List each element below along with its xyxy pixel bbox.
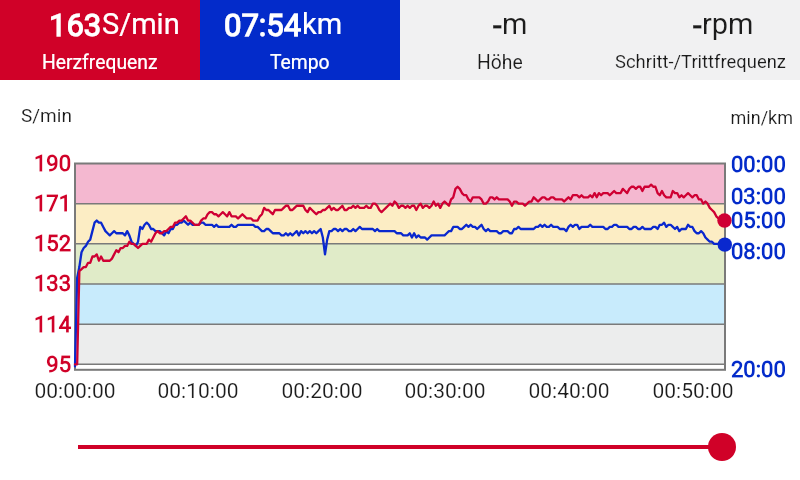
staticText: - (693, 7, 702, 43)
staticText: S/min (21, 104, 121, 126)
staticText: 07:54 (224, 7, 302, 43)
staticText: 163 (49, 7, 102, 43)
staticText: rpm (702, 7, 754, 41)
staticText: 190 (0, 151, 71, 177)
staticText: 00:20:00 (262, 379, 382, 404)
staticText: 00:30:00 (385, 379, 505, 404)
staticText: 08:00 (731, 239, 800, 265)
staticText: 20:00 (731, 357, 800, 383)
staticText: Höhe (477, 51, 523, 74)
staticText: 95 (0, 352, 71, 378)
staticText: 171 (0, 191, 71, 217)
button[interactable]: Timeline position (706, 431, 738, 463)
staticText: 133 (0, 271, 71, 297)
staticText: Schritt-/Trittfrequenz (615, 51, 786, 73)
staticText: Herzfrequenz (42, 51, 158, 74)
button[interactable]: - (600, 0, 800, 80)
button[interactable]: 163 (0, 0, 200, 80)
staticText: 05:00 (731, 208, 800, 234)
staticText: 00:40:00 (509, 379, 629, 404)
staticText: min/km (703, 107, 793, 128)
staticText: 00:00 (731, 152, 800, 178)
staticText: 00:10:00 (138, 379, 258, 404)
button[interactable]: - (400, 0, 600, 80)
staticText: m (502, 7, 528, 41)
staticText: Tempo (270, 51, 330, 74)
staticText: 03:00 (731, 184, 800, 210)
staticText: 00:00:00 (15, 379, 135, 404)
staticText: S/min (102, 7, 180, 41)
button[interactable]: 07:54 (200, 0, 400, 80)
staticText: - (493, 7, 502, 43)
staticText: 00:50:00 (633, 379, 753, 404)
staticText: 114 (0, 312, 71, 338)
staticText: 152 (0, 231, 71, 257)
staticText: km (302, 7, 343, 41)
